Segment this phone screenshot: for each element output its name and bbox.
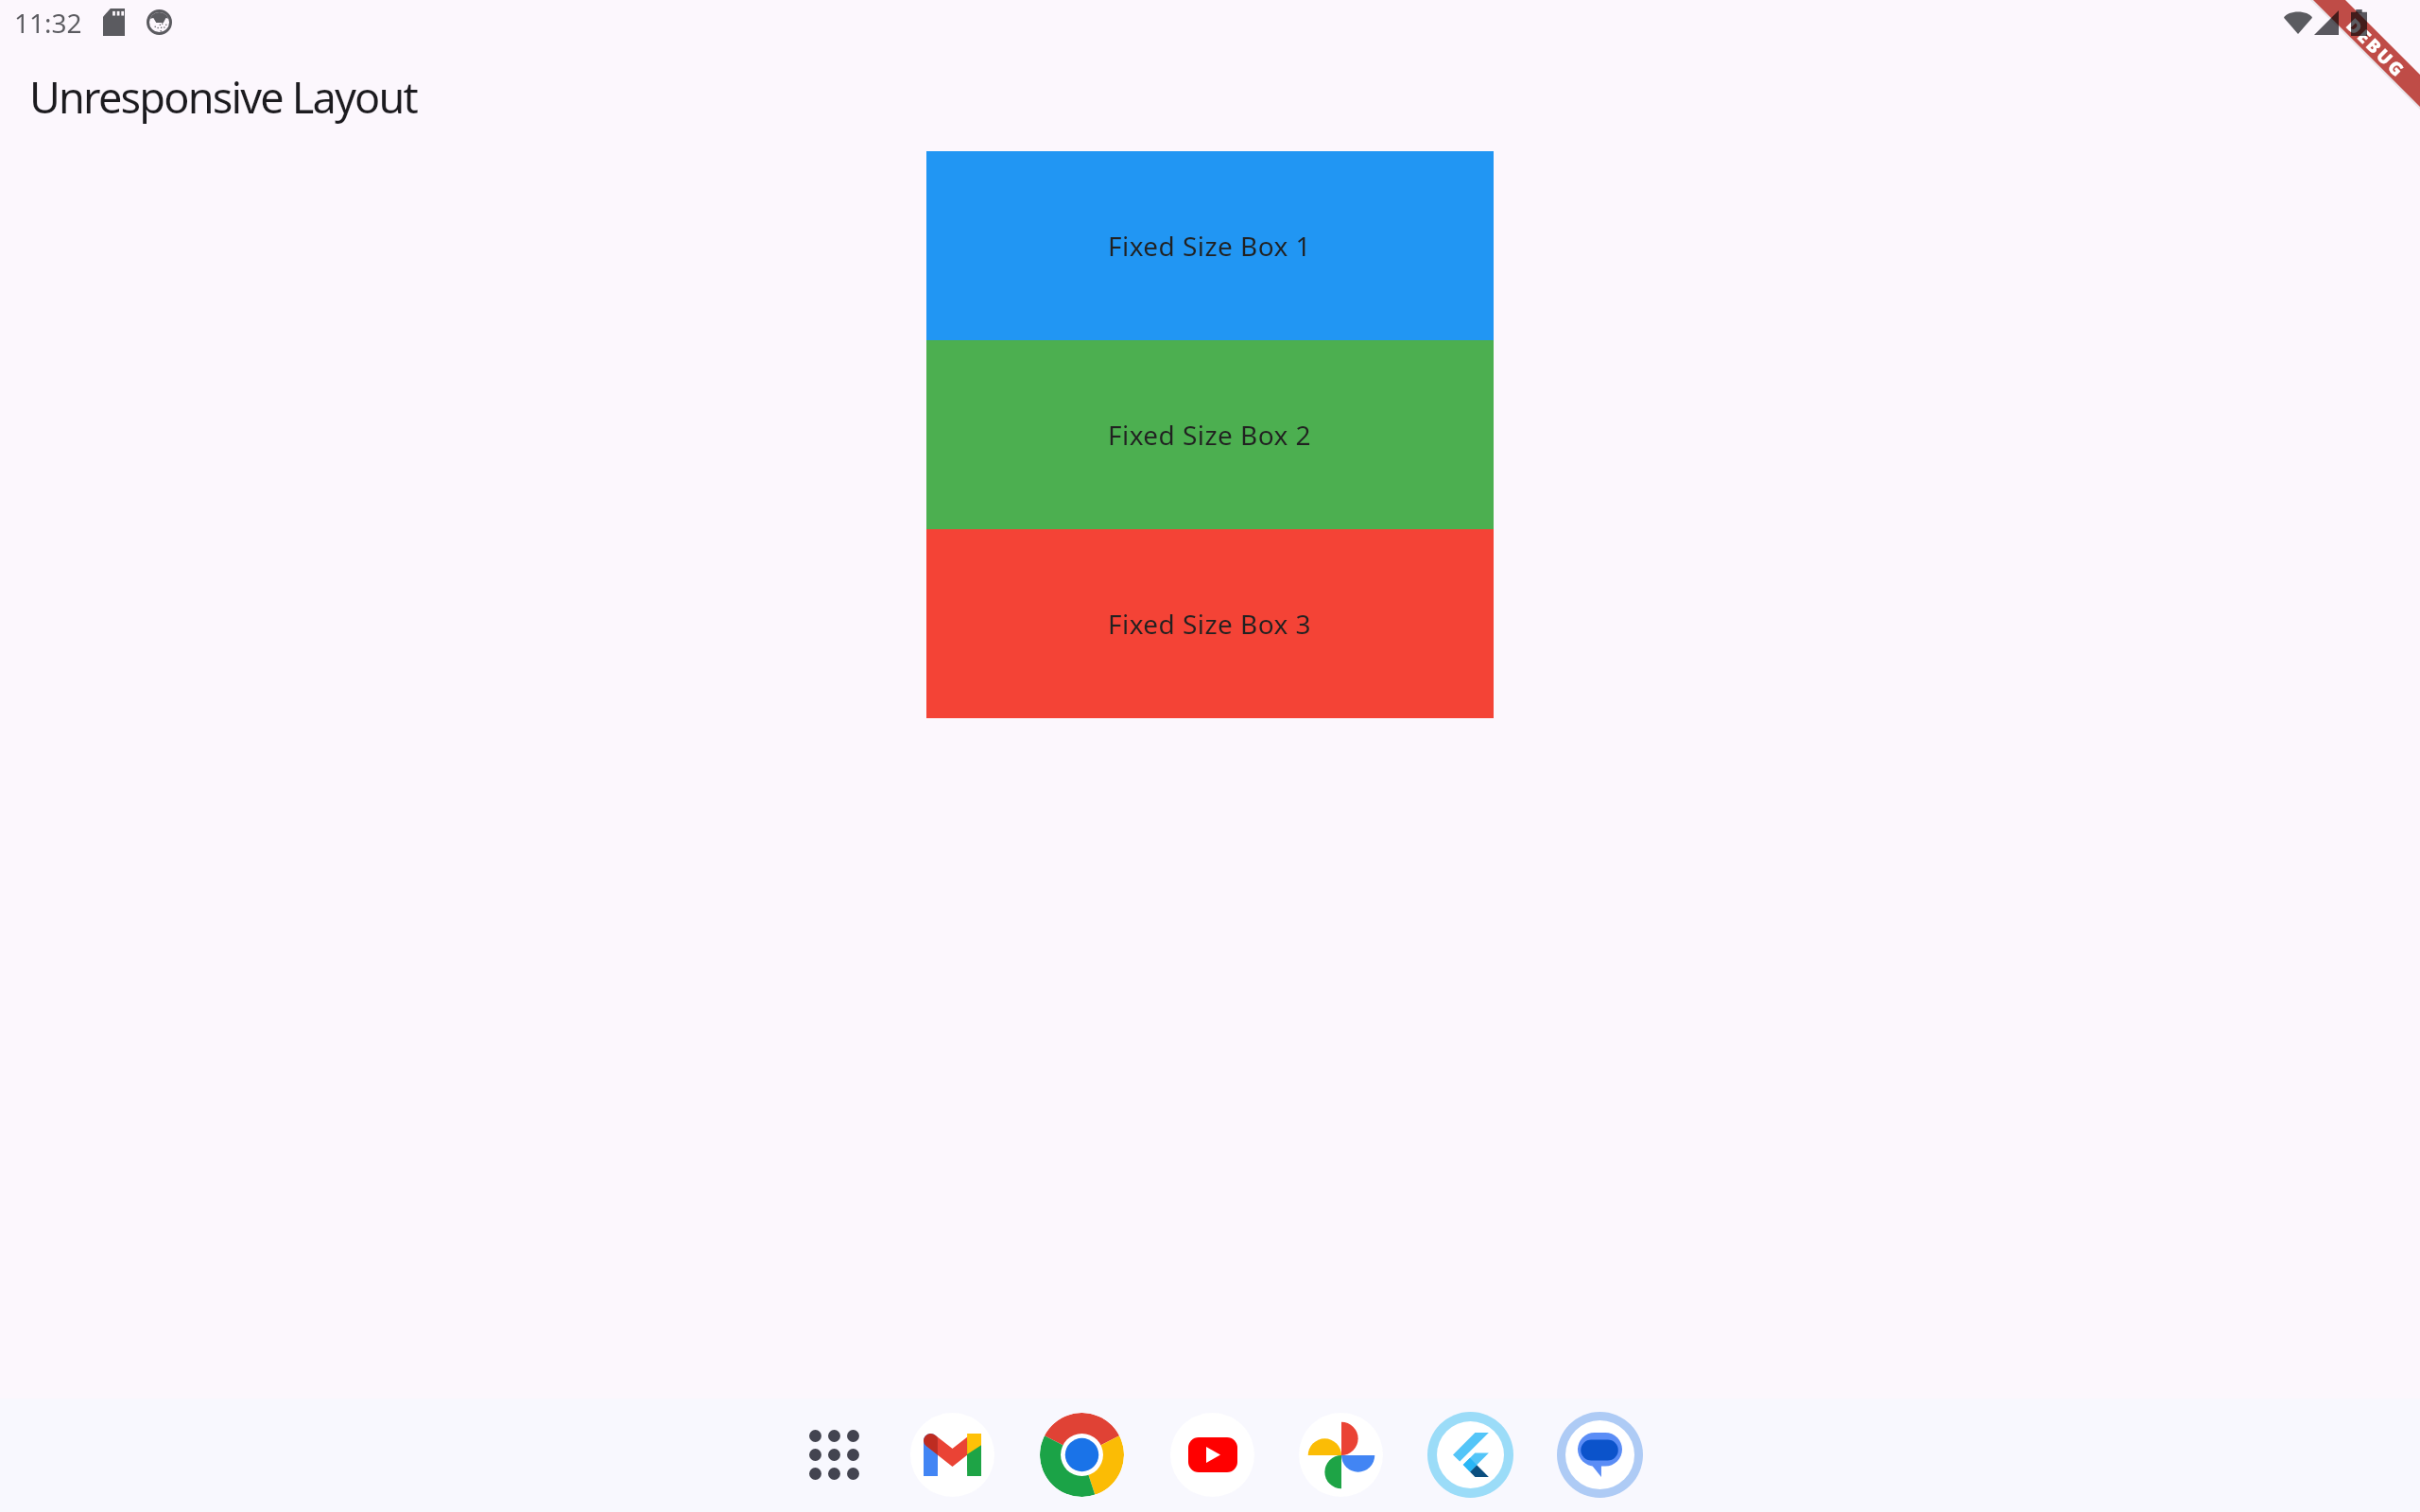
button[interactable]: Fixed Size Box 2 bbox=[926, 340, 1494, 529]
button[interactable]: Messages bbox=[1557, 1412, 1643, 1498]
staticText: Fixed Size Box 1 bbox=[1108, 228, 1312, 264]
button[interactable]: Flutter bbox=[1427, 1412, 1513, 1498]
button[interactable]: Chrome bbox=[1040, 1413, 1124, 1497]
staticText: Fixed Size Box 3 bbox=[1108, 606, 1312, 642]
staticText: DEBUG bbox=[2342, 13, 2411, 82]
button[interactable]: Gmail bbox=[910, 1413, 994, 1497]
staticText: 11:32 bbox=[14, 5, 82, 41]
staticText: Fixed Size Box 2 bbox=[1108, 417, 1312, 453]
staticText: Unresponsive Layout bbox=[29, 68, 417, 126]
button[interactable]: Fixed Size Box 1 bbox=[926, 151, 1494, 340]
button[interactable]: All apps bbox=[796, 1417, 872, 1492]
button[interactable]: YouTube bbox=[1170, 1413, 1254, 1497]
button[interactable]: Google Photos bbox=[1299, 1413, 1383, 1497]
button[interactable]: Fixed Size Box 3 bbox=[926, 529, 1494, 718]
